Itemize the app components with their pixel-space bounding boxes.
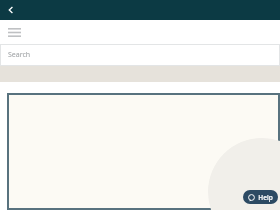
button[interactable]: Menu xyxy=(5,23,23,41)
button[interactable]: Back xyxy=(4,3,18,17)
button[interactable]: Help xyxy=(243,190,278,204)
button[interactable]: Search xyxy=(0,44,280,66)
staticText: Help xyxy=(258,193,273,202)
staticText: Search xyxy=(8,50,31,60)
